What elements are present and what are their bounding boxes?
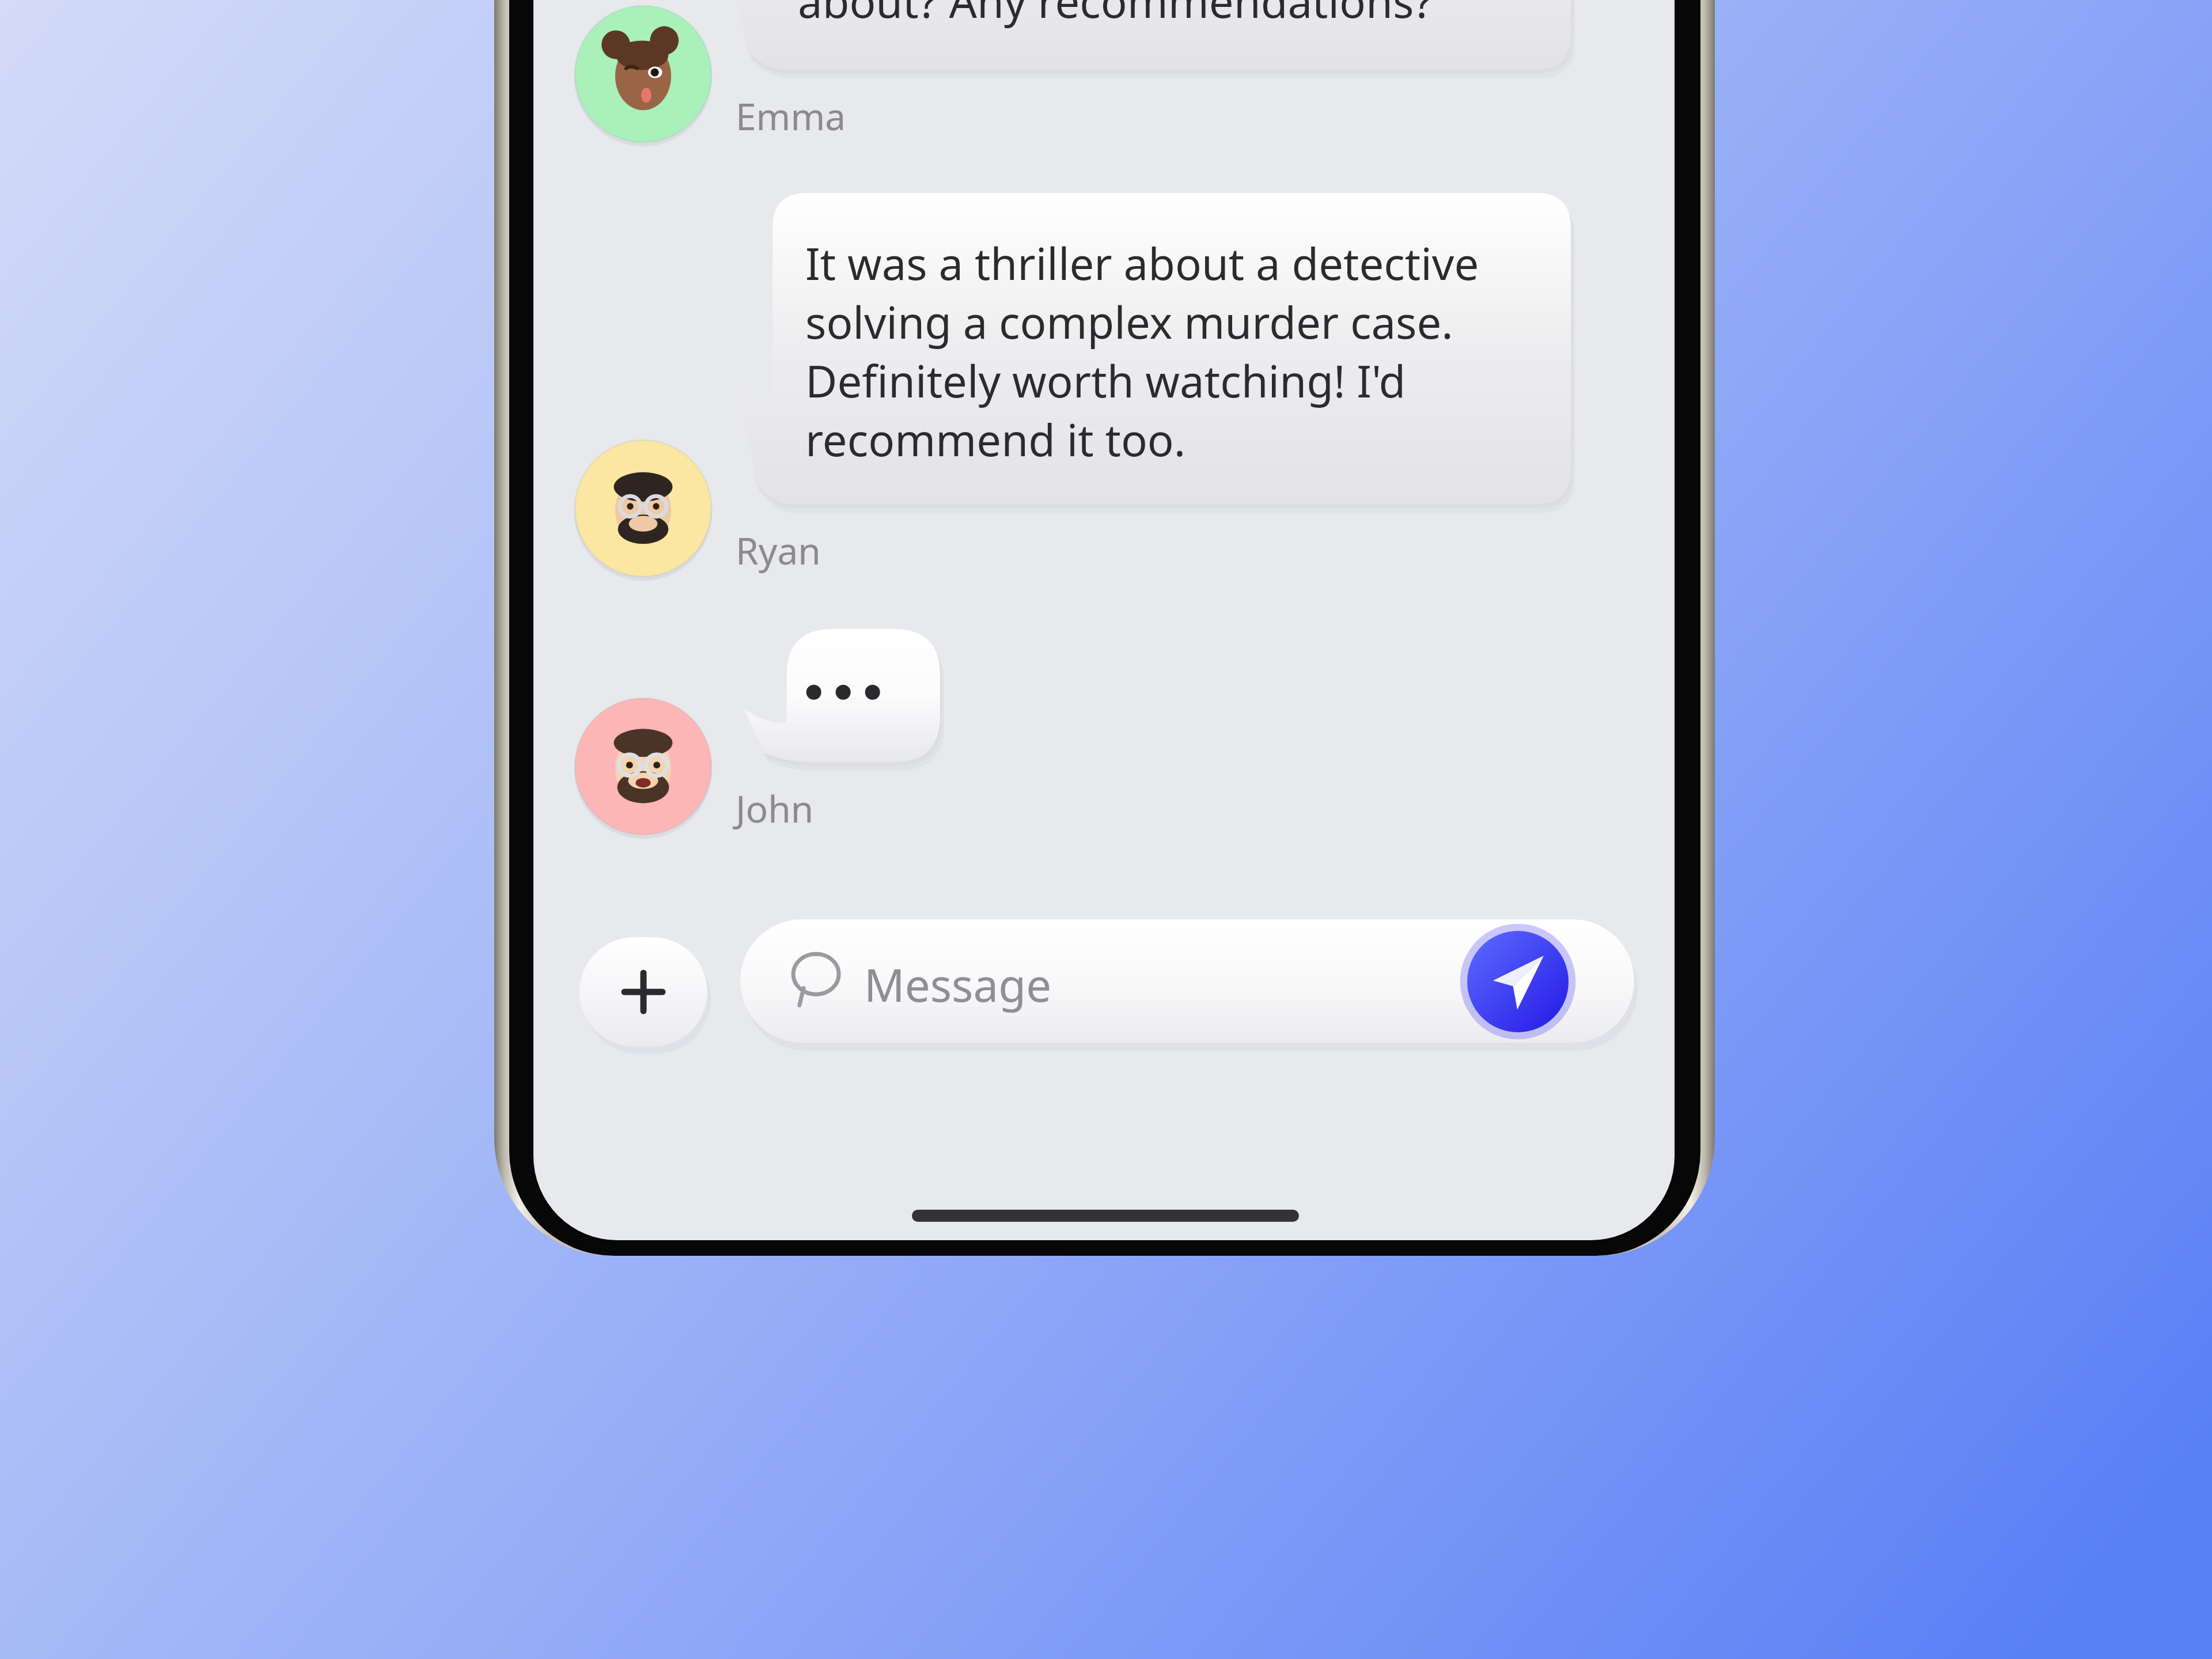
staticText: about? Any recommendations? <box>798 0 1433 31</box>
button[interactable]: It was a thriller about a detective solv… <box>741 193 1571 504</box>
button[interactable]: Send <box>1467 931 1569 1032</box>
button[interactable]: John is typing <box>744 629 940 762</box>
staticText: John <box>736 783 814 834</box>
staticText: Emma <box>736 91 846 141</box>
staticText: It was a thriller about a detective solv… <box>805 233 1479 469</box>
button[interactable]: Add attachment <box>579 937 707 1047</box>
staticText: Ryan <box>736 525 821 575</box>
staticText: Message <box>864 954 1052 1015</box>
button[interactable]: Message <box>740 919 1634 1043</box>
button[interactable]: about? Any recommendations? <box>733 0 1571 69</box>
